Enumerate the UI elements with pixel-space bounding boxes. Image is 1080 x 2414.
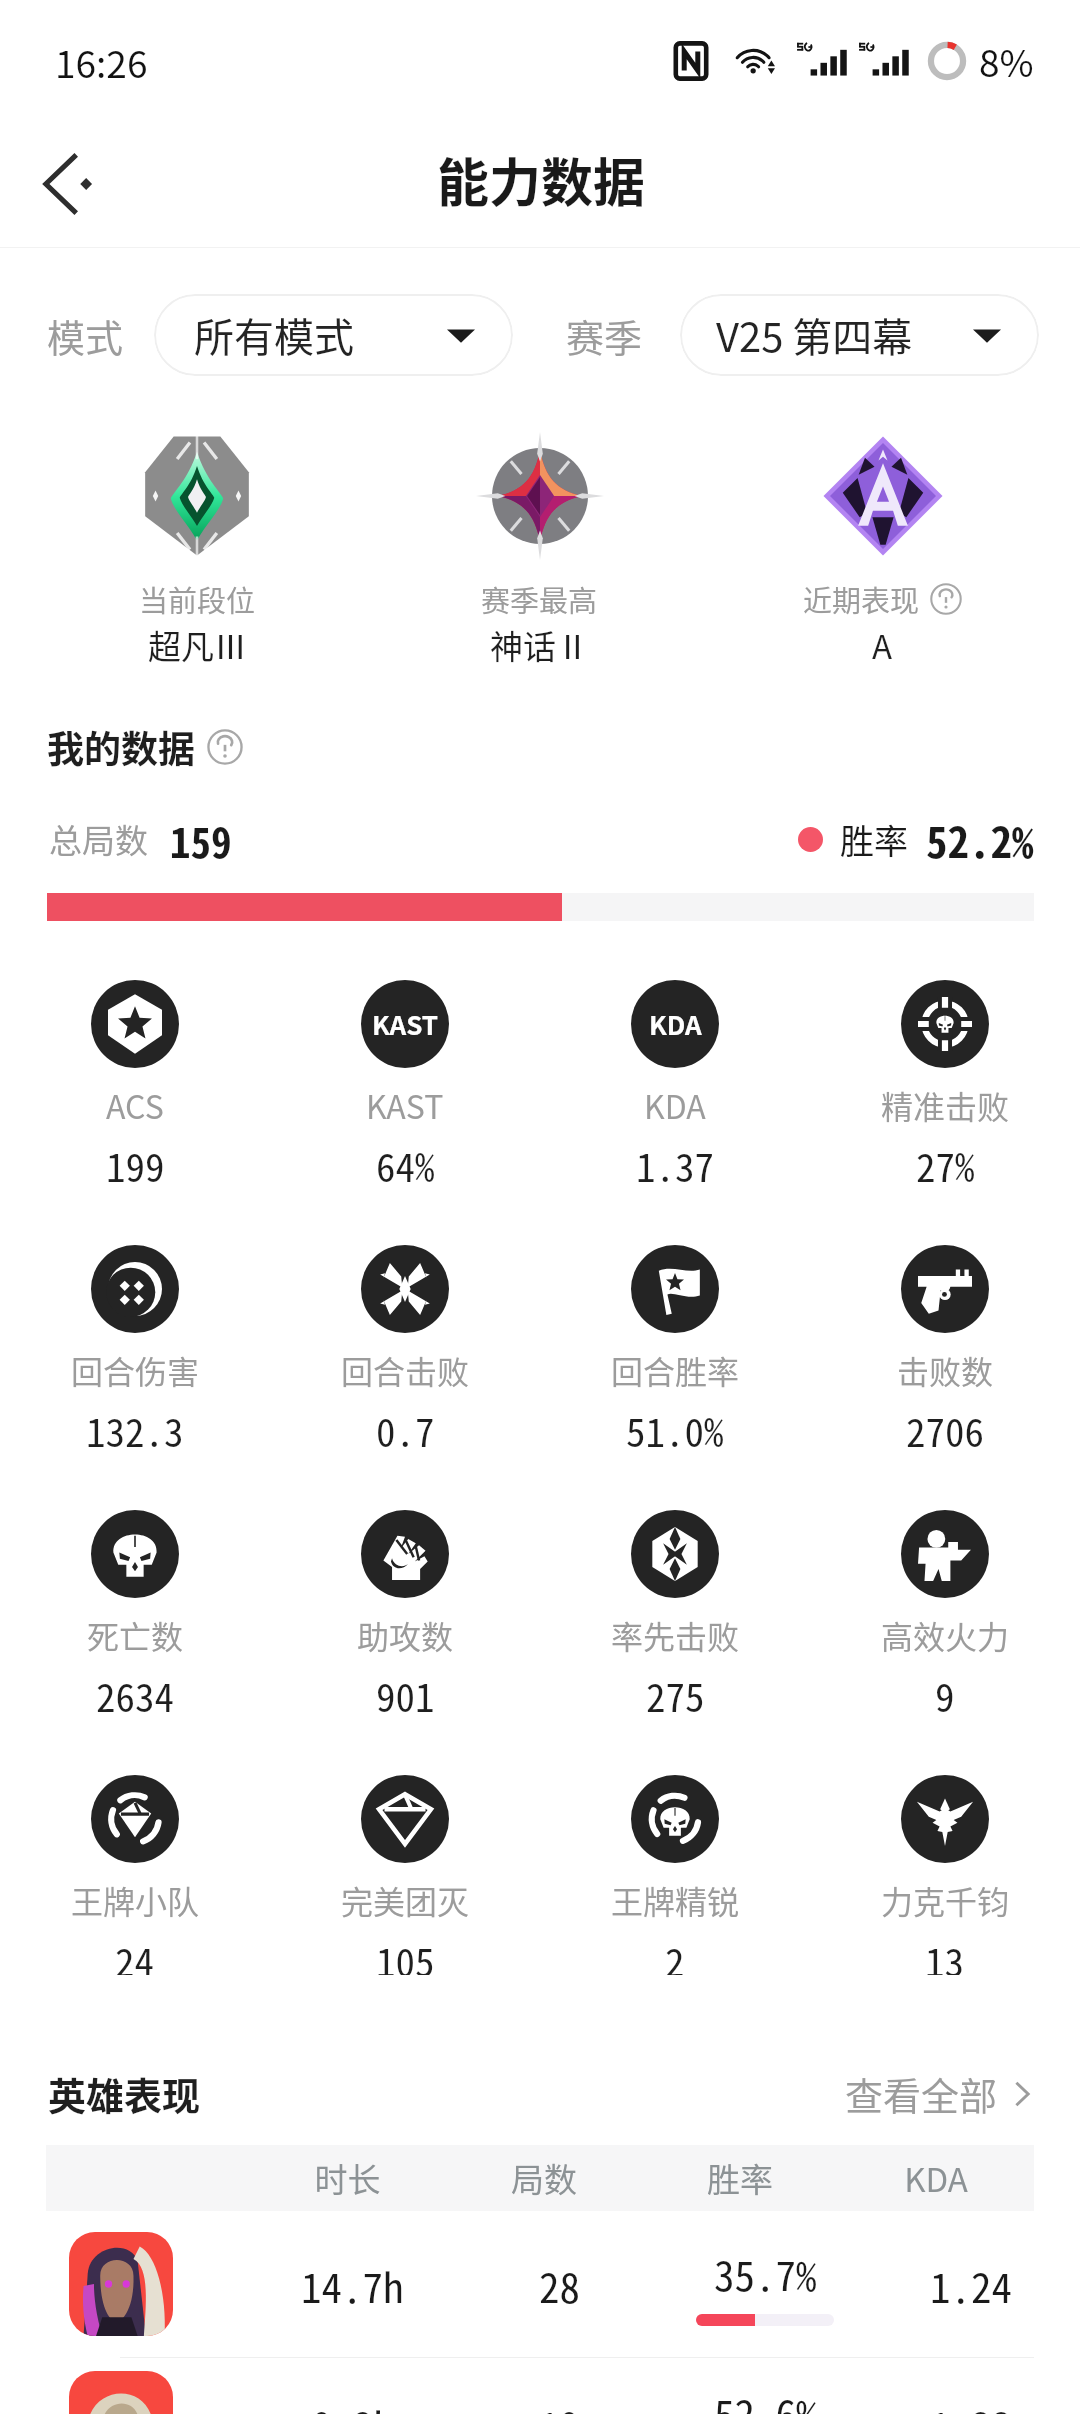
- staticText: V25 第四幕: [716, 306, 913, 364]
- staticText: 9.2h: [312, 2394, 394, 2414]
- staticText: 赛季: [566, 308, 643, 363]
- staticText: 27%: [916, 1137, 975, 1193]
- button[interactable]: 9.2h: [46, 2358, 1074, 2414]
- staticText: 击败数: [897, 1347, 994, 1393]
- staticText: 率先击败: [611, 1612, 740, 1658]
- staticText: 2: [665, 1932, 685, 1975]
- staticText: 我的数据: [47, 720, 195, 774]
- staticText: 能力数据: [437, 142, 646, 217]
- staticText: 当前段位: [139, 578, 256, 620]
- staticText: 赛季最高: [481, 578, 598, 620]
- staticText: 159: [170, 810, 232, 869]
- staticText: 1.33: [930, 2394, 1012, 2414]
- staticText: KAST: [372, 1005, 439, 1043]
- staticText: 901: [376, 1667, 435, 1723]
- staticText: 52.2%: [926, 808, 1034, 870]
- staticText: 28: [539, 2255, 580, 2314]
- staticText: 胜率: [642, 2154, 838, 2202]
- staticText: 局数: [446, 2154, 642, 2202]
- staticText: 9: [935, 1667, 955, 1723]
- staticText: 英雄表现: [48, 2066, 201, 2121]
- staticText: 51.0%: [626, 1402, 724, 1458]
- button[interactable]: 所有模式: [154, 294, 513, 376]
- staticText: 精准击败: [881, 1082, 1010, 1128]
- staticText: 神话Ⅱ: [490, 621, 589, 669]
- staticText: 1.37: [636, 1137, 715, 1193]
- staticText: 死亡数: [87, 1612, 184, 1658]
- button[interactable]: Back: [20, 129, 130, 239]
- staticText: 王牌精锐: [611, 1877, 740, 1923]
- staticText: 24: [115, 1932, 155, 1975]
- staticText: 近期表现: [803, 578, 920, 620]
- button[interactable]: 查看全部: [845, 2066, 1036, 2121]
- staticText: 查看全部: [845, 2066, 998, 2121]
- staticText: 132.3: [86, 1402, 184, 1458]
- staticText: KDA: [649, 1005, 702, 1043]
- staticText: 回合伤害: [71, 1347, 200, 1393]
- staticText: 回合胜率: [611, 1347, 740, 1393]
- button[interactable]: V25 第四幕: [680, 294, 1039, 376]
- staticText: 1.24: [930, 2255, 1012, 2314]
- staticText: 0.7: [376, 1402, 435, 1458]
- staticText: 2706: [906, 1402, 985, 1458]
- staticText: 助攻数: [357, 1612, 454, 1658]
- button[interactable]: 14.7h: [46, 2211, 1074, 2357]
- staticText: 王牌小队: [71, 1877, 200, 1923]
- staticText: 64%: [376, 1137, 435, 1193]
- staticText: 2634: [96, 1667, 175, 1723]
- staticText: 超凡Ⅲ: [148, 621, 247, 669]
- staticText: KAST: [366, 1082, 444, 1128]
- staticText: 199: [106, 1137, 165, 1193]
- staticText: 35.7%: [714, 2243, 817, 2302]
- staticText: KDA: [644, 1082, 706, 1128]
- staticText: 14.7h: [301, 2255, 404, 2314]
- staticText: 高效火力: [881, 1612, 1010, 1658]
- staticText: 胜率: [840, 815, 908, 864]
- staticText: 总局数: [49, 815, 148, 863]
- staticText: 回合击败: [341, 1347, 470, 1393]
- staticText: 所有模式: [194, 306, 354, 364]
- staticText: A: [872, 621, 893, 669]
- staticText: 52.6%: [714, 2382, 817, 2414]
- staticText: 时长: [249, 2154, 446, 2202]
- staticText: 力克千钧: [881, 1877, 1010, 1923]
- staticText: 完美团灭: [341, 1877, 470, 1923]
- staticText: 19: [539, 2394, 580, 2414]
- staticText: 16:26: [55, 35, 148, 89]
- staticText: 8%: [979, 34, 1034, 88]
- staticText: KDA: [838, 2154, 1034, 2202]
- staticText: ACS: [106, 1082, 164, 1128]
- staticText: 模式: [47, 308, 124, 363]
- staticText: 275: [646, 1667, 705, 1723]
- staticText: 13: [925, 1932, 965, 1975]
- staticText: 105: [376, 1932, 435, 1975]
